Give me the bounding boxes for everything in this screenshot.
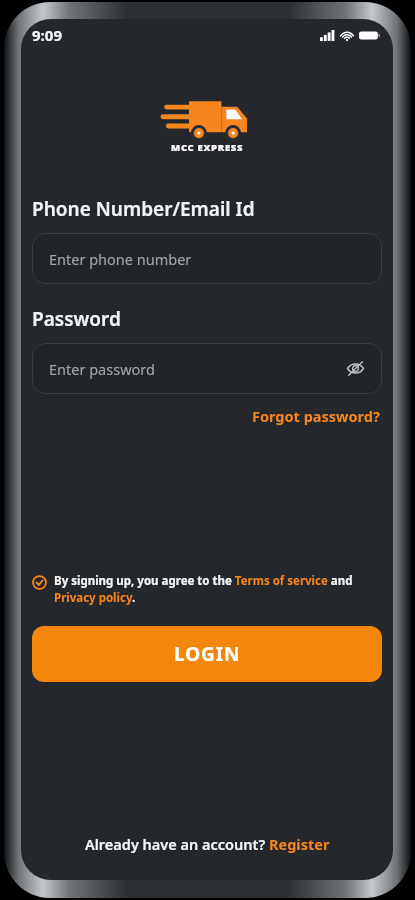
staticText: Register xyxy=(269,834,330,854)
staticText: Enter phone number xyxy=(49,249,192,269)
button[interactable]: Already have an account? xyxy=(21,834,393,854)
staticText: By signing up, you agree to the Terms of… xyxy=(54,573,379,605)
staticText: 9:09 xyxy=(32,25,62,45)
button[interactable]: Enter password xyxy=(32,343,382,394)
staticText: MCC EXPRESS xyxy=(171,141,244,154)
button[interactable]: LOGIN xyxy=(32,626,382,682)
other: Toggle password visibility xyxy=(346,359,365,378)
staticText: Password xyxy=(32,306,121,332)
staticText: LOGIN xyxy=(174,641,241,667)
other: Agree to terms xyxy=(32,575,47,590)
staticText: Enter password xyxy=(49,359,155,379)
button[interactable]: Agree to terms xyxy=(32,573,379,605)
staticText: Already have an account? xyxy=(85,834,269,854)
staticText: Forgot password? xyxy=(252,406,380,426)
staticText: Phone Number/Email Id xyxy=(32,196,255,222)
button[interactable]: Forgot password? xyxy=(250,404,382,428)
button[interactable]: Enter phone number xyxy=(32,233,382,284)
